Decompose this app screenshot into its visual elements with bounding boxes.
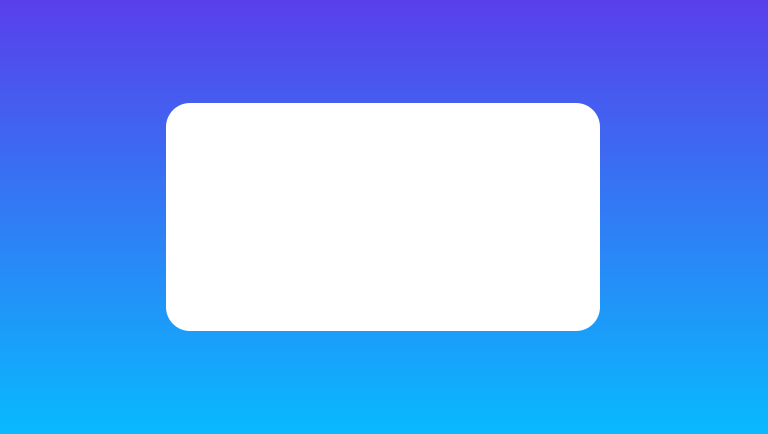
- button[interactable]: Card: [166, 103, 600, 331]
